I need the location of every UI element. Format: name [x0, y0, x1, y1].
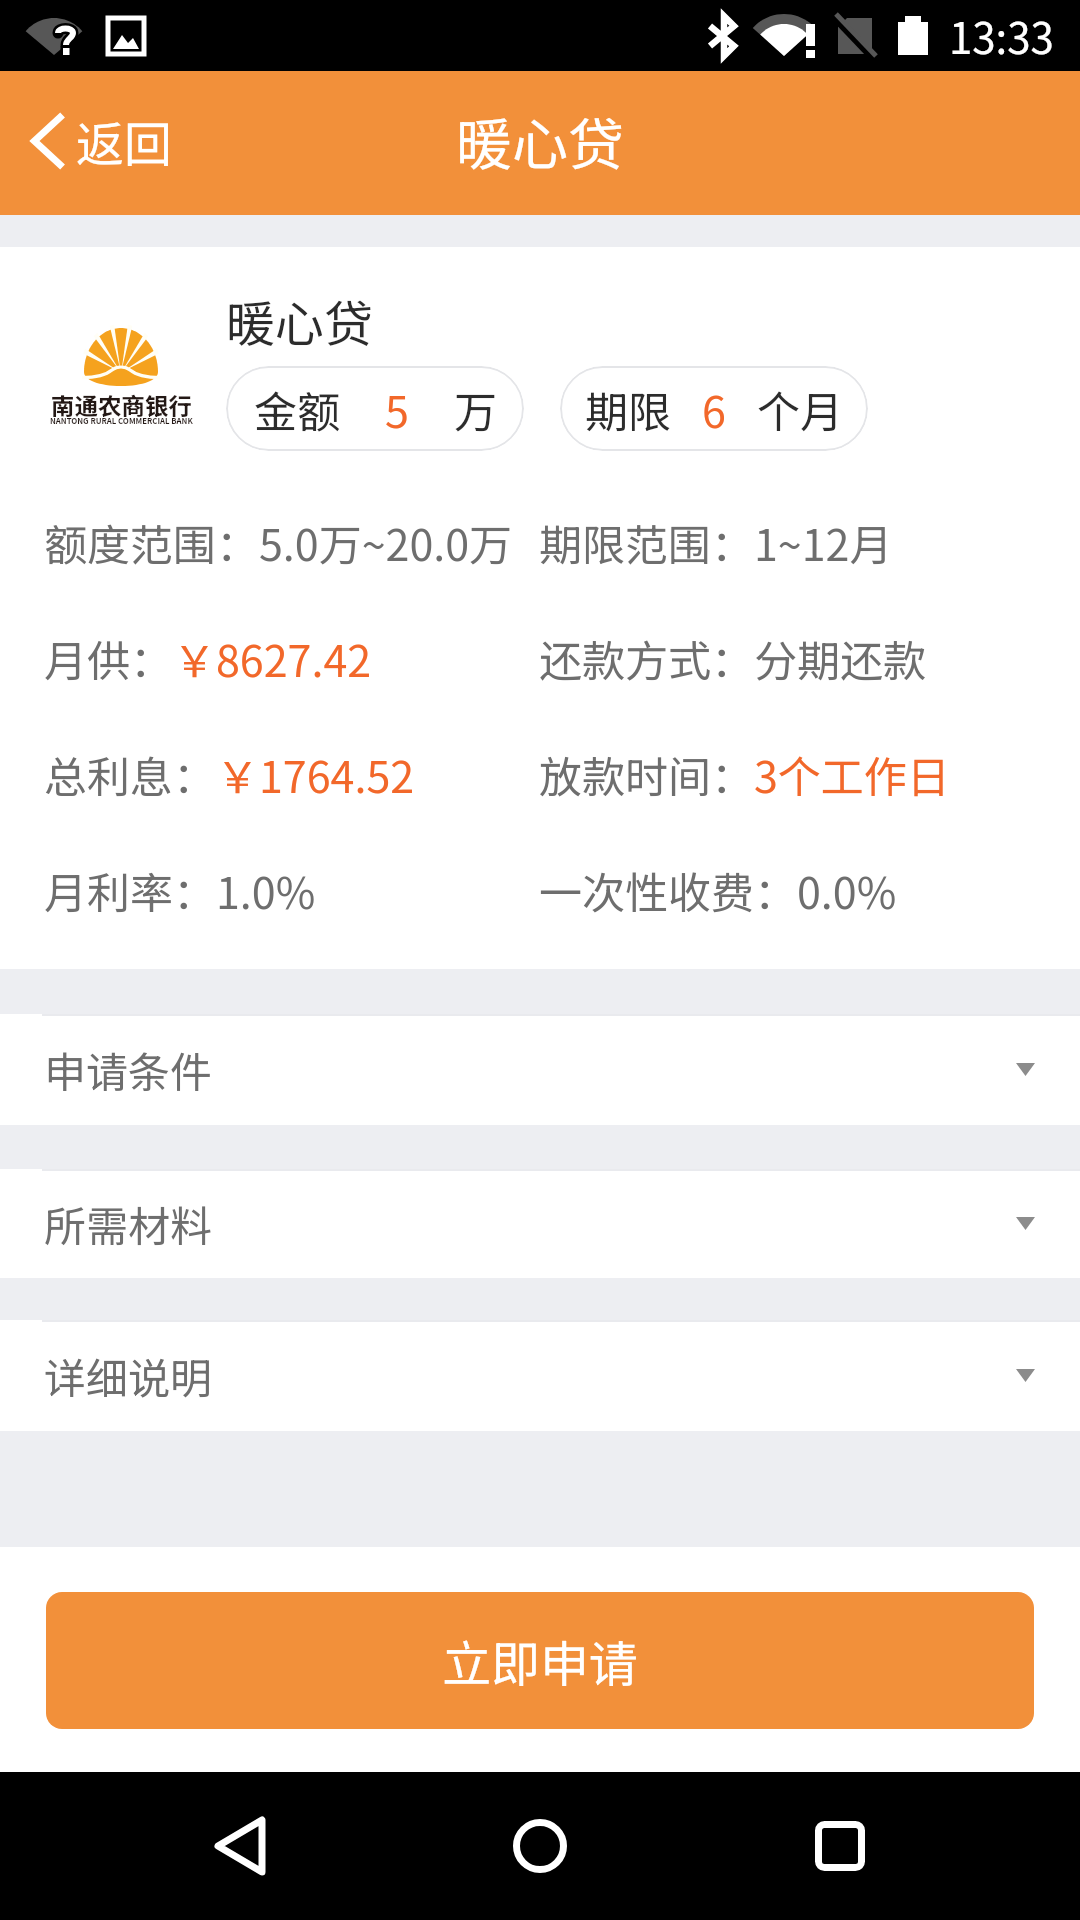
- staticText: 一次性收费：0.0%: [539, 859, 897, 921]
- staticText: 暖心贷: [226, 285, 374, 356]
- staticText: 还款方式：分期还款: [539, 627, 926, 689]
- staticText: NANTONG RURAL COMMERCIAL BANK: [50, 415, 193, 426]
- staticText: 金额: [254, 378, 340, 440]
- button[interactable]: Back: [150, 1772, 330, 1920]
- button[interactable]: 返回: [0, 86, 197, 196]
- staticText: 详细说明: [44, 1345, 213, 1406]
- staticText: 申请条件: [44, 1039, 213, 1100]
- button[interactable]: 申请条件: [0, 1014, 1080, 1125]
- staticText: 月利率：1.0%: [44, 859, 316, 921]
- staticText: 返回: [76, 106, 173, 176]
- button[interactable]: Home: [450, 1772, 630, 1920]
- button[interactable]: 所需材料: [0, 1169, 1080, 1278]
- staticText: 月供：￥8627.42: [44, 627, 372, 689]
- staticText: 13:33: [949, 5, 1054, 66]
- staticText: 南通农商银行: [51, 388, 192, 422]
- staticText: 立即申请: [442, 1625, 639, 1696]
- button[interactable]: 立即申请: [46, 1592, 1034, 1729]
- staticText: 期限范围：1~12月: [539, 511, 893, 573]
- button[interactable]: 金额: [226, 366, 524, 451]
- button[interactable]: Recents: [750, 1772, 930, 1920]
- staticText: 额度范围：5.0万~20.0万: [44, 511, 513, 573]
- staticText: 放款时间：3个工作日: [539, 743, 950, 805]
- staticText: 5: [385, 378, 409, 440]
- staticText: 暖心贷: [456, 100, 624, 181]
- staticText: 期限: [585, 378, 671, 440]
- button[interactable]: 详细说明: [0, 1320, 1080, 1431]
- staticText: 6: [702, 378, 726, 440]
- staticText: 总利息：￥1764.52: [44, 743, 415, 805]
- staticText: 个月: [757, 378, 843, 440]
- button[interactable]: 期限: [560, 366, 868, 451]
- staticText: 万: [454, 378, 497, 440]
- staticText: 所需材料: [44, 1193, 213, 1254]
